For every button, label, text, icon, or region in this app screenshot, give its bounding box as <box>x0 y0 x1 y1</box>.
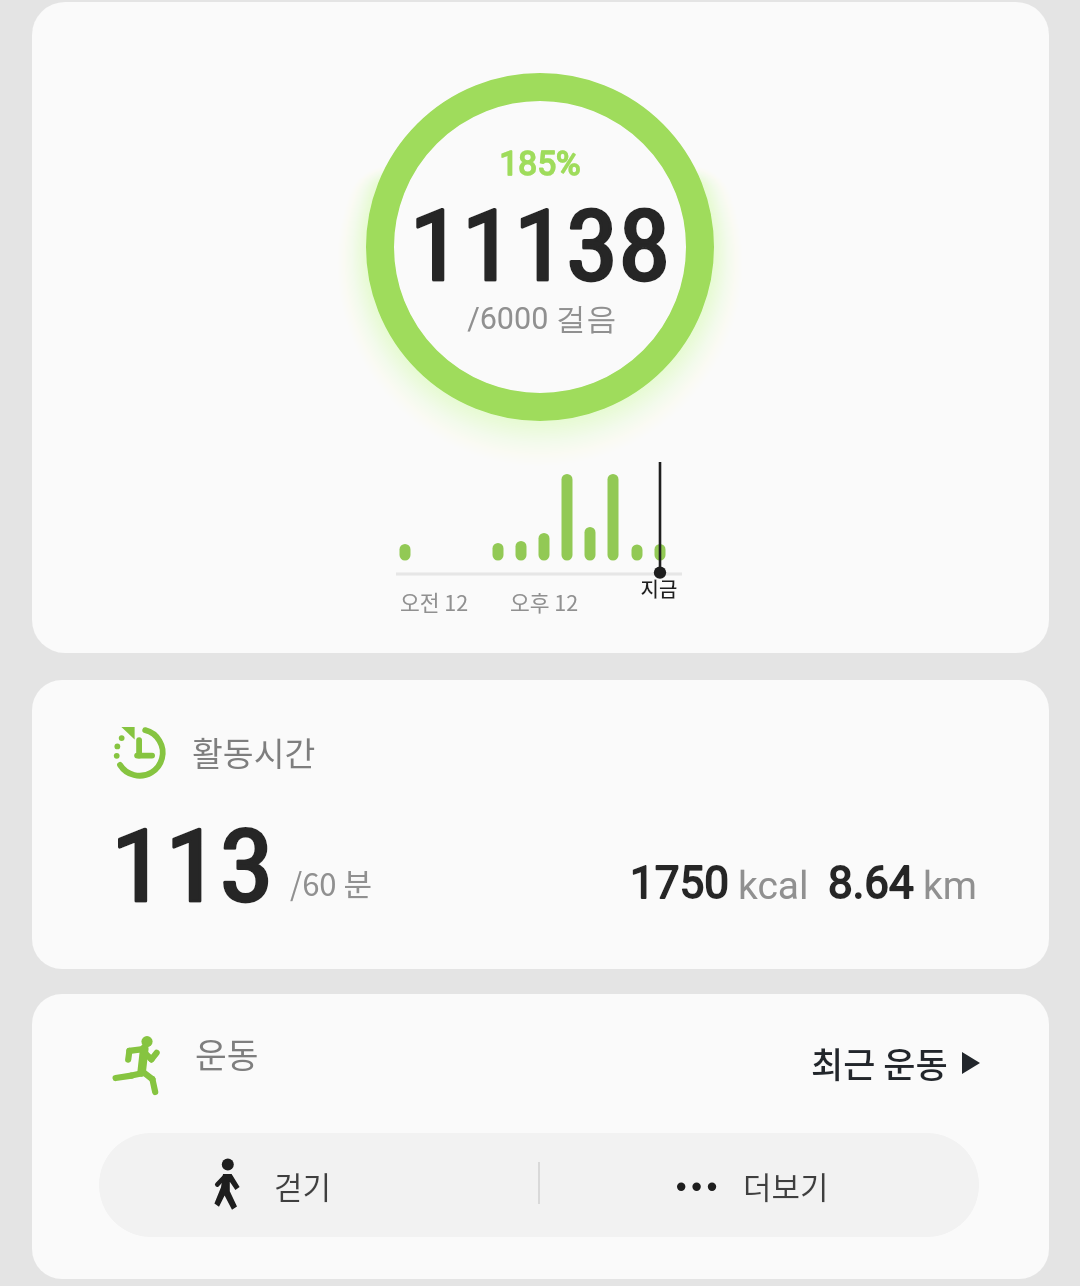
button[interactable]: 더보기 <box>539 1133 979 1237</box>
staticText: 지금 <box>359 574 959 603</box>
staticText: 활동시간 <box>192 727 316 776</box>
button[interactable]: 최근 운동 <box>811 1037 981 1088</box>
staticText: 운동 <box>195 1028 259 1078</box>
staticText: 8.64 <box>828 857 914 909</box>
staticText: 113 <box>111 808 275 925</box>
button[interactable]: Active time <box>32 680 1049 969</box>
staticText: 1750 <box>630 857 729 909</box>
staticText: 113 <box>111 808 275 925</box>
other: Exercise <box>112 1034 162 1098</box>
staticText: 오전 12 <box>134 586 734 617</box>
staticText: 8.64 <box>828 857 914 909</box>
staticText: 185% <box>240 144 840 183</box>
staticText: 최근 운동 <box>811 1037 948 1088</box>
staticText: 11138 <box>214 190 865 304</box>
staticText: /6000 걸음 <box>242 300 842 338</box>
button[interactable]: 걷기 <box>99 1133 539 1237</box>
staticText: kcal <box>738 863 809 909</box>
staticText: 오후 12 <box>244 586 844 617</box>
other: Open recent workouts <box>962 1052 981 1074</box>
staticText: km <box>923 863 977 909</box>
staticText: 걷기 <box>274 1163 332 1208</box>
staticText: /60 분 <box>290 860 373 905</box>
staticText: 더보기 <box>743 1163 829 1208</box>
button[interactable]: 185% <box>32 2 1049 653</box>
staticText: 1750 <box>630 857 729 909</box>
other: Active time <box>110 718 170 778</box>
staticText: 185% <box>240 144 840 183</box>
staticText: 11138 <box>214 190 865 304</box>
